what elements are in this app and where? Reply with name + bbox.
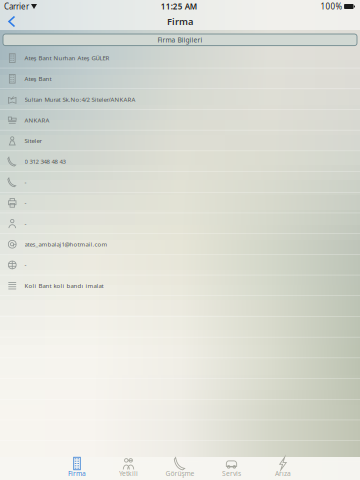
staticText: Firma	[167, 15, 193, 28]
button[interactable]: Ateş Bant Nurhan Ateş GÜLER	[0, 48, 360, 68]
staticText: Yetkili	[119, 469, 138, 478]
button[interactable]	[0, 379, 360, 399]
staticText: Arıza	[275, 469, 291, 478]
button[interactable]	[0, 317, 360, 337]
staticText: -	[24, 199, 26, 207]
staticText: ates_ambalaj1@hotmail.com	[24, 240, 107, 248]
staticText: 11:25 AM	[161, 1, 197, 12]
button[interactable]: Görüşme	[154, 457, 206, 480]
staticText: Sultan Murat Sk.No:4/2 Siteler/ANKARA	[24, 95, 135, 103]
button[interactable]	[0, 337, 360, 358]
button[interactable]	[0, 441, 360, 462]
staticText: Koli Bant koli bandı imalat	[24, 282, 103, 290]
button[interactable]: Arıza	[257, 457, 309, 480]
button[interactable]: Back	[0, 13, 27, 29]
staticText: Firma	[68, 469, 86, 478]
staticText: 0 312 348 48 43	[24, 157, 65, 166]
staticText: Carrier	[4, 1, 29, 12]
button[interactable]: -	[0, 172, 360, 192]
button[interactable]: -	[0, 192, 360, 213]
button[interactable]: Servis	[206, 457, 257, 480]
button[interactable]: Firma	[51, 457, 103, 480]
button[interactable]	[0, 420, 360, 441]
button[interactable]: Firma Bilgileri	[0, 34, 360, 46]
button[interactable]: Ateş Bant	[0, 68, 360, 89]
staticText: Ateş Bant Nurhan Ateş GÜLER	[24, 54, 109, 62]
button[interactable]: Yetkili	[103, 457, 154, 480]
staticText: Servis	[222, 469, 241, 478]
button[interactable]: Koli Bant koli bandı imalat	[0, 275, 360, 296]
button[interactable]: ANKARA	[0, 110, 360, 130]
staticText: Görüşme	[165, 469, 194, 478]
staticText: -	[24, 178, 26, 186]
button[interactable]: -	[0, 255, 360, 275]
button[interactable]	[0, 296, 360, 317]
button[interactable]: -	[0, 213, 360, 234]
staticText: 100%	[320, 1, 342, 12]
staticText: Firma Bilgileri	[157, 35, 202, 44]
button[interactable]: ates_ambalaj1@hotmail.com	[0, 234, 360, 255]
button[interactable]: Sultan Murat Sk.No:4/2 Siteler/ANKARA	[0, 89, 360, 110]
staticText: Ateş Bant	[24, 75, 51, 83]
staticText: Siteler	[24, 137, 41, 145]
staticText: -	[24, 261, 26, 269]
button[interactable]	[0, 399, 360, 420]
staticText: -	[24, 219, 26, 228]
button[interactable]	[0, 358, 360, 379]
staticText: ANKARA	[24, 116, 49, 124]
button[interactable]: Siteler	[0, 130, 360, 151]
button[interactable]: 0 312 348 48 43	[0, 151, 360, 172]
